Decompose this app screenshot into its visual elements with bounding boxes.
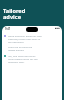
staticText: 9:41 bbox=[5, 27, 11, 31]
staticText: hours before lunch for the bbox=[8, 57, 38, 60]
staticText: calendar, today looks busy in bbox=[8, 37, 41, 40]
staticText: Good morning. Based on your bbox=[8, 34, 42, 37]
staticText: the afternoon. bbox=[8, 40, 25, 43]
staticText: Want me to move the bbox=[8, 45, 33, 48]
staticText: Tailored advice bbox=[3, 7, 26, 20]
staticText: review earlier? bbox=[8, 48, 25, 51]
staticText: Yes, and block two focus bbox=[8, 54, 36, 57]
button[interactable]: Yes, and block two focus bbox=[4, 54, 60, 63]
staticText: ▪▪▪ bbox=[55, 27, 60, 30]
button[interactable]: Good morning. Based on your bbox=[4, 34, 60, 43]
staticText: quarterly plan. bbox=[8, 60, 25, 63]
